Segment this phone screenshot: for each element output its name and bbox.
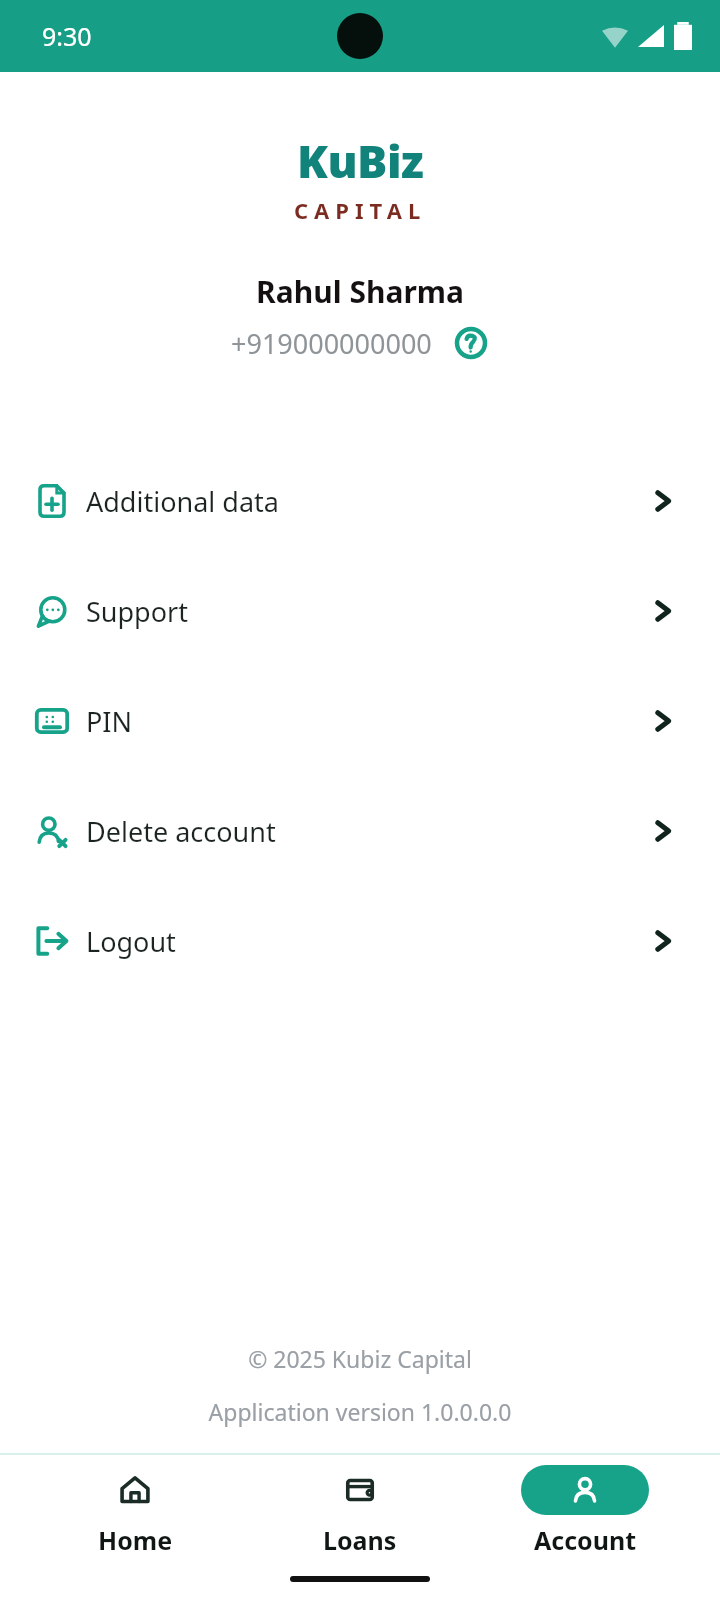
staticText: © 2025 Kubiz Capital	[0, 1343, 720, 1374]
staticText: Account	[534, 1523, 637, 1557]
button[interactable]: Support	[0, 556, 720, 666]
staticText: 9:30	[42, 19, 92, 53]
staticText: Loans	[323, 1523, 397, 1557]
button[interactable]: Help	[452, 324, 490, 362]
button[interactable]: Account	[495, 1465, 675, 1557]
button[interactable]: Additional data	[0, 446, 720, 556]
staticText: Rahul Sharma	[0, 271, 720, 312]
staticText: +919000000000	[231, 325, 432, 362]
button[interactable]: Logout	[0, 886, 720, 996]
staticText: Home	[98, 1523, 173, 1557]
staticText: Application version 1.0.0.0.0	[0, 1396, 720, 1427]
button[interactable]: PIN	[0, 666, 720, 776]
staticText: Support	[86, 593, 188, 630]
staticText: PIN	[86, 703, 133, 740]
staticText: CAPITAL	[294, 195, 427, 225]
staticText: Logout	[86, 923, 176, 960]
staticText: KuBiz	[297, 130, 424, 191]
button[interactable]: Loans	[270, 1465, 450, 1557]
staticText: Additional data	[86, 483, 279, 520]
button[interactable]: Home	[45, 1465, 225, 1557]
staticText: Delete account	[86, 813, 276, 850]
button[interactable]: Delete account	[0, 776, 720, 886]
